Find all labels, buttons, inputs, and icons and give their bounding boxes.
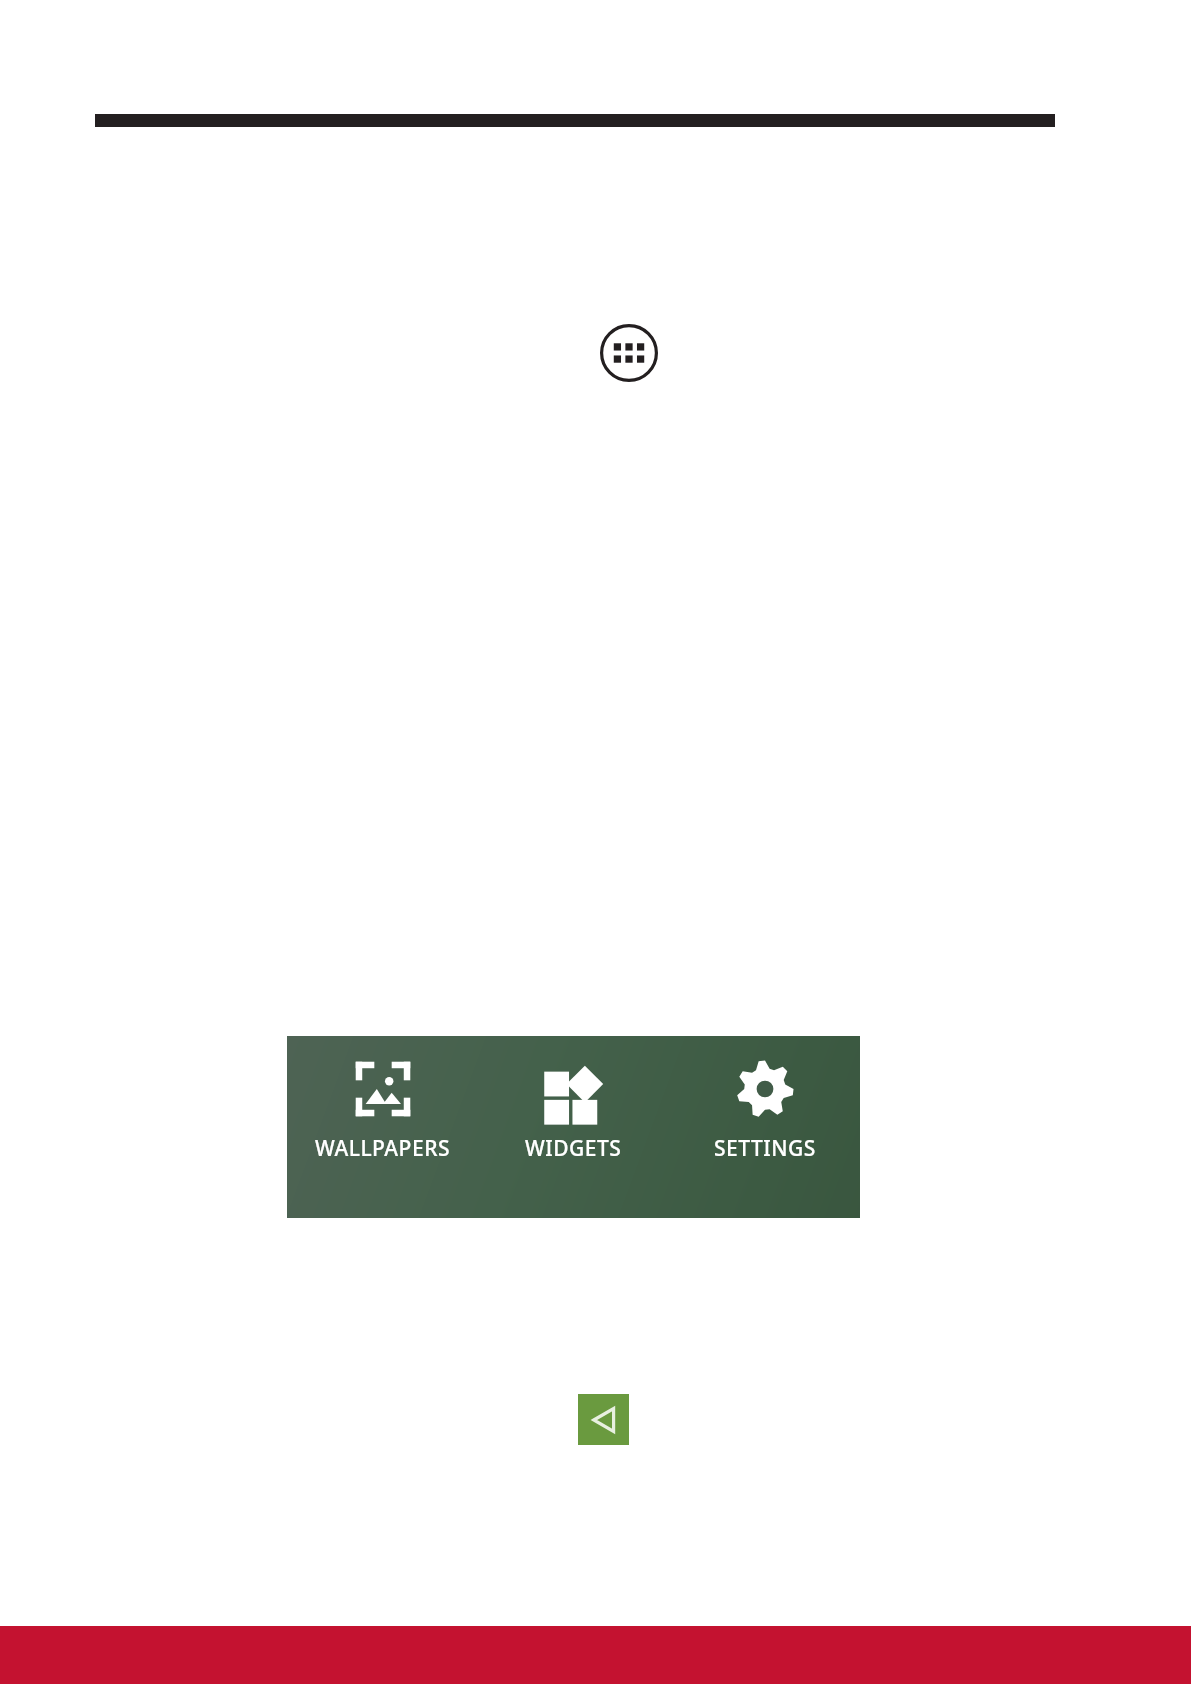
staticText: SETTINGS <box>714 1134 816 1163</box>
button[interactable]: Back <box>578 1394 629 1445</box>
button[interactable]: WIDGETS <box>478 1036 669 1218</box>
staticText: WIDGETS <box>525 1134 622 1163</box>
button[interactable]: SETTINGS <box>669 1036 860 1218</box>
staticText: WALLPAPERS <box>315 1134 450 1163</box>
button[interactable]: All apps <box>600 324 658 382</box>
button[interactable]: WALLPAPERS <box>287 1036 478 1218</box>
